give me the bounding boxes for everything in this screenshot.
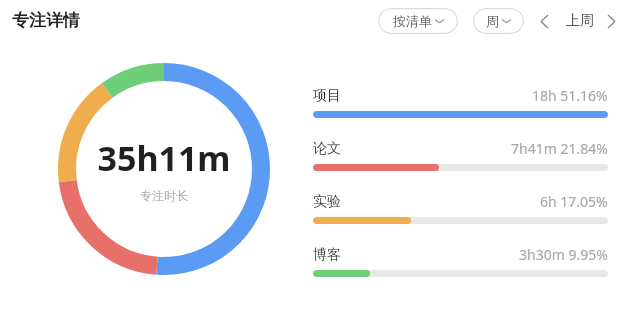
staticText: 实验 (313, 193, 341, 211)
staticText: 项目 (313, 87, 341, 105)
button[interactable]: 上周 (557, 8, 603, 34)
staticText: 按清单 (393, 13, 432, 29)
staticText: 博客 (313, 246, 341, 264)
staticText: 3h30m 9.95% (519, 245, 608, 264)
staticText: 专注时长 (140, 188, 188, 203)
staticText: 6h 17.05% (540, 192, 608, 211)
button[interactable]: 35h11m (58, 63, 270, 275)
button[interactable]: Next week (601, 8, 621, 34)
staticText: 专注详情 (12, 10, 80, 31)
button[interactable]: 按清单 (378, 8, 458, 34)
button[interactable]: 博客 (313, 245, 608, 277)
button[interactable]: Previous week (533, 8, 555, 34)
staticText: 上周 (566, 12, 594, 30)
staticText: 7h41m 21.84% (511, 139, 608, 158)
button[interactable]: 周 (473, 8, 524, 34)
button[interactable]: 论文 (313, 139, 608, 171)
staticText: 18h 51.16% (532, 86, 608, 105)
staticText: 论文 (313, 140, 341, 158)
staticText: 周 (486, 13, 499, 29)
staticText: 35h11m (97, 135, 231, 181)
button[interactable]: 实验 (313, 192, 608, 224)
button[interactable]: 项目 (313, 86, 608, 118)
